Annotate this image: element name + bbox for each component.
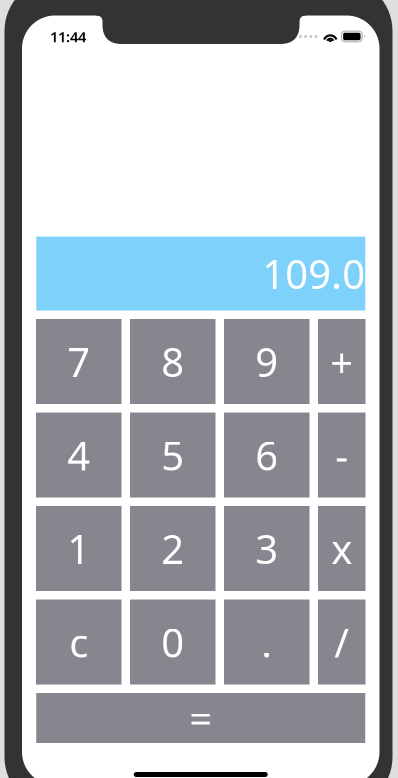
staticText: 109.0 xyxy=(262,247,365,300)
button[interactable]: / xyxy=(318,599,365,684)
staticText: 8 xyxy=(161,335,184,388)
staticText: = xyxy=(189,691,212,744)
button[interactable]: . xyxy=(224,599,309,684)
staticText: 4 xyxy=(67,428,90,481)
button[interactable]: - xyxy=(318,412,365,497)
button[interactable]: + xyxy=(318,319,365,404)
button[interactable]: x xyxy=(318,506,365,591)
staticText: 9 xyxy=(255,335,278,388)
staticText: 2 xyxy=(161,522,184,575)
button[interactable]: 9 xyxy=(224,319,309,404)
button[interactable]: 5 xyxy=(130,412,215,497)
staticText: 7 xyxy=(67,335,90,388)
staticText: / xyxy=(334,615,349,668)
button[interactable]: 6 xyxy=(224,412,309,497)
staticText: - xyxy=(335,428,348,481)
staticText: 5 xyxy=(161,428,184,481)
button[interactable]: 2 xyxy=(130,506,215,591)
staticText: x xyxy=(331,522,352,575)
button[interactable]: 0 xyxy=(130,599,215,684)
staticText: 6 xyxy=(255,428,278,481)
staticText: 3 xyxy=(255,522,278,575)
button[interactable]: 1 xyxy=(36,506,121,591)
button[interactable]: 3 xyxy=(224,506,309,591)
staticText: 0 xyxy=(161,615,184,668)
staticText: c xyxy=(69,615,88,668)
button[interactable]: 4 xyxy=(36,412,121,497)
button[interactable]: c xyxy=(36,599,121,684)
staticText: . xyxy=(261,615,272,668)
button[interactable]: = xyxy=(36,693,365,743)
button[interactable]: 7 xyxy=(36,319,121,404)
staticText: 1 xyxy=(67,522,90,575)
staticText: + xyxy=(330,335,353,388)
staticText: 11:44 xyxy=(50,27,86,46)
button[interactable]: 8 xyxy=(130,319,215,404)
